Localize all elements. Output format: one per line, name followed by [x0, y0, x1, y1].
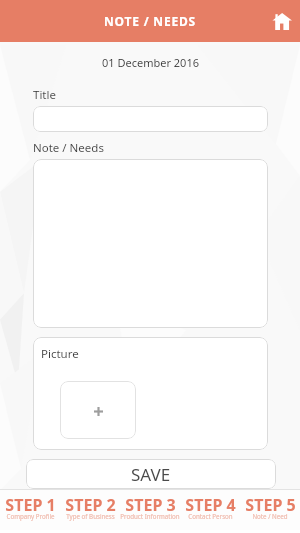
- button[interactable]: STEP 5: [240, 490, 300, 530]
- staticText: Product Information: [120, 512, 180, 520]
- staticText: STEP 2: [65, 494, 116, 516]
- staticText: STEP 3: [125, 494, 176, 516]
- button[interactable]: Add picture: [60, 381, 136, 439]
- staticText: Contact Person: [188, 512, 233, 520]
- staticText: Title: [33, 87, 56, 103]
- button[interactable]: STEP 3: [120, 490, 180, 530]
- button[interactable]: [33, 106, 268, 132]
- button[interactable]: STEP 4: [180, 490, 240, 530]
- button[interactable]: SAVE: [26, 459, 276, 489]
- button[interactable]: Home: [258, 0, 300, 42]
- staticText: NOTE / NEEDS: [104, 13, 196, 29]
- staticText: Note / Need: [252, 512, 288, 520]
- staticText: 01 December 2016: [102, 55, 199, 70]
- staticText: STEP 5: [245, 494, 296, 516]
- button[interactable]: [33, 159, 268, 328]
- staticText: Picture: [41, 346, 79, 362]
- button[interactable]: STEP 1: [0, 490, 60, 530]
- staticText: SAVE: [131, 463, 171, 486]
- staticText: Company Profile: [6, 512, 55, 520]
- staticText: Note / Needs: [33, 140, 104, 156]
- staticText: Type of Business: [66, 512, 115, 520]
- staticText: STEP 1: [5, 494, 56, 516]
- staticText: STEP 4: [185, 494, 236, 516]
- button[interactable]: STEP 2: [60, 490, 120, 530]
